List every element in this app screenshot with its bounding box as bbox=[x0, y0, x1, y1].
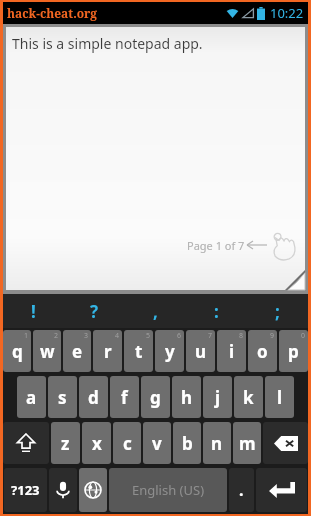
button[interactable]: Voice input bbox=[49, 468, 77, 512]
button[interactable]: ? bbox=[64, 294, 125, 328]
button[interactable]: This is a simple notepad app. bbox=[6, 27, 305, 290]
button[interactable]: r bbox=[93, 330, 122, 372]
button[interactable]: ! bbox=[3, 294, 64, 328]
button[interactable]: n bbox=[203, 422, 231, 464]
staticText: f bbox=[121, 386, 128, 409]
button[interactable]: Change language bbox=[79, 468, 107, 512]
button[interactable]: Shift bbox=[3, 422, 49, 464]
button[interactable]: . bbox=[229, 468, 254, 512]
button[interactable]: p bbox=[279, 330, 308, 372]
staticText: English (US) bbox=[132, 481, 205, 499]
button[interactable]: ?123 bbox=[4, 468, 47, 512]
staticText: q bbox=[12, 340, 23, 363]
staticText: ?123 bbox=[11, 481, 40, 499]
staticText: v bbox=[152, 432, 162, 455]
staticText: l bbox=[277, 386, 283, 409]
staticText: k bbox=[243, 386, 254, 409]
staticText: z bbox=[61, 432, 70, 455]
button[interactable]: u bbox=[186, 330, 215, 372]
staticText: 4 bbox=[115, 331, 120, 341]
staticText: 8 bbox=[239, 331, 244, 341]
staticText: 10:22 bbox=[270, 4, 304, 22]
staticText: : bbox=[214, 300, 219, 323]
button[interactable]: Enter bbox=[256, 468, 307, 512]
staticText: ! bbox=[31, 300, 36, 323]
staticText: a bbox=[26, 386, 37, 409]
button[interactable]: k bbox=[234, 376, 263, 418]
button[interactable]: x bbox=[82, 422, 111, 464]
staticText: hack-cheat.org bbox=[7, 5, 98, 21]
staticText: . bbox=[239, 479, 244, 501]
staticText: c bbox=[123, 432, 132, 455]
staticText: 7 bbox=[208, 331, 213, 341]
staticText: ? bbox=[90, 300, 99, 323]
staticText: b bbox=[182, 432, 193, 455]
staticText: 1 bbox=[24, 331, 29, 341]
staticText: t bbox=[135, 340, 143, 363]
staticText: i bbox=[229, 340, 235, 363]
staticText: 3 bbox=[84, 331, 89, 341]
button[interactable]: w bbox=[33, 330, 61, 372]
button[interactable]: t bbox=[124, 330, 153, 372]
staticText: w bbox=[40, 340, 55, 363]
staticText: j bbox=[215, 386, 221, 409]
staticText: h bbox=[181, 386, 193, 409]
staticText: , bbox=[153, 300, 158, 323]
button[interactable]: e bbox=[63, 330, 91, 372]
button[interactable]: b bbox=[173, 422, 201, 464]
button[interactable]: f bbox=[110, 376, 139, 418]
button[interactable]: English (US) bbox=[109, 468, 227, 512]
staticText: x bbox=[92, 432, 102, 455]
staticText: d bbox=[88, 386, 99, 409]
button[interactable]: y bbox=[155, 330, 184, 372]
button[interactable]: a bbox=[17, 376, 46, 418]
button[interactable]: h bbox=[172, 376, 201, 418]
button[interactable]: ; bbox=[247, 294, 308, 328]
button[interactable]: m bbox=[233, 422, 261, 464]
button[interactable]: g bbox=[141, 376, 170, 418]
staticText: n bbox=[211, 432, 223, 455]
staticText: 9 bbox=[270, 331, 275, 341]
staticText: This is a simple notepad app. bbox=[12, 34, 203, 53]
staticText: 5 bbox=[146, 331, 151, 341]
staticText: r bbox=[104, 340, 112, 363]
button[interactable]: : bbox=[186, 294, 247, 328]
staticText: p bbox=[288, 340, 299, 363]
staticText: g bbox=[150, 386, 161, 409]
button[interactable]: d bbox=[79, 376, 108, 418]
staticText: 0 bbox=[301, 331, 306, 341]
button[interactable]: , bbox=[125, 294, 186, 328]
button[interactable]: c bbox=[113, 422, 141, 464]
staticText: m bbox=[239, 432, 256, 455]
staticText: ; bbox=[275, 300, 280, 323]
staticText: Page 1 of 7 bbox=[187, 238, 245, 253]
button[interactable]: j bbox=[203, 376, 232, 418]
staticText: e bbox=[72, 340, 83, 363]
button[interactable]: v bbox=[143, 422, 171, 464]
button[interactable]: o bbox=[248, 330, 277, 372]
button[interactable]: i bbox=[217, 330, 246, 372]
staticText: 6 bbox=[177, 331, 182, 341]
staticText: y bbox=[165, 340, 175, 363]
staticText: 2 bbox=[54, 331, 59, 341]
button[interactable]: l bbox=[265, 376, 294, 418]
button[interactable]: q bbox=[3, 330, 31, 372]
staticText: o bbox=[257, 340, 268, 363]
staticText: u bbox=[195, 340, 207, 363]
button[interactable]: z bbox=[51, 422, 80, 464]
staticText: s bbox=[58, 386, 67, 409]
button[interactable]: s bbox=[48, 376, 77, 418]
button[interactable]: Backspace bbox=[263, 422, 308, 464]
